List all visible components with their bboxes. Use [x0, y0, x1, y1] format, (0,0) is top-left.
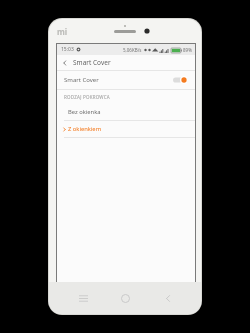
staticText: Z okienkiem — [68, 125, 188, 133]
staticText: Smart Cover — [64, 76, 173, 84]
button[interactable]: Back — [57, 55, 73, 70]
staticText: Bez okienka — [68, 108, 188, 116]
staticText: 89% — [183, 47, 192, 53]
staticText: mi — [57, 26, 68, 37]
staticText: Smart Cover — [73, 58, 111, 67]
button[interactable]: Home — [116, 289, 134, 307]
button[interactable]: Bez okienka — [57, 104, 195, 120]
staticText: RODZAJ POKROWCA — [64, 94, 110, 100]
button[interactable]: Smart Cover — [57, 71, 195, 89]
button[interactable]: Back — [159, 289, 177, 307]
staticText: 5,06KB/s — [123, 47, 142, 53]
button[interactable]: Z okienkiem — [57, 121, 195, 137]
button[interactable]: Menu — [74, 289, 92, 307]
staticText: 15:03 — [61, 46, 74, 53]
